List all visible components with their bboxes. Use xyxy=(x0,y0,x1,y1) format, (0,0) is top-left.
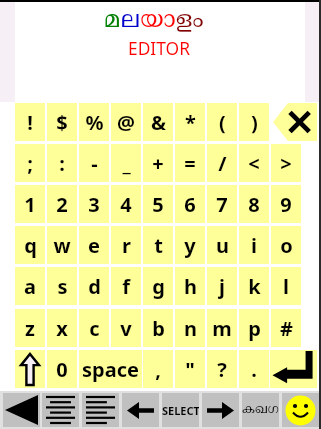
button[interactable]: / xyxy=(207,144,237,182)
staticText: > xyxy=(280,150,292,177)
staticText: v xyxy=(120,315,132,342)
button[interactable]: i xyxy=(239,226,269,264)
button[interactable]: 2 xyxy=(47,185,77,223)
button[interactable]: > xyxy=(271,144,301,182)
staticText: # xyxy=(280,315,293,342)
staticText: : xyxy=(59,150,65,177)
button[interactable]: a xyxy=(15,267,45,305)
staticText: % xyxy=(85,109,104,136)
button[interactable]: + xyxy=(143,144,173,182)
button[interactable]: Move right xyxy=(202,393,239,427)
button[interactable]: y xyxy=(175,226,205,264)
button[interactable]: r xyxy=(111,226,141,264)
staticText: " xyxy=(185,356,195,383)
button[interactable]: 5 xyxy=(143,185,173,223)
button[interactable]: - xyxy=(79,144,109,182)
button[interactable]: j xyxy=(207,267,237,305)
button[interactable]: l xyxy=(271,267,301,305)
button[interactable]: x xyxy=(47,309,77,347)
staticText: ( xyxy=(219,109,226,136)
button[interactable]: * xyxy=(175,103,205,141)
staticText: l xyxy=(283,273,289,300)
button[interactable]: p xyxy=(239,309,269,347)
button[interactable]: c xyxy=(79,309,109,347)
button[interactable]: . xyxy=(239,350,269,388)
button[interactable]: Align center xyxy=(42,393,79,427)
button[interactable]: m xyxy=(207,309,237,347)
button[interactable]: z xyxy=(15,309,45,347)
staticText: t xyxy=(154,232,163,259)
button[interactable]: " xyxy=(175,350,205,388)
button[interactable]: % xyxy=(79,103,109,141)
button[interactable]: u xyxy=(207,226,237,264)
staticText: 3 xyxy=(88,191,100,218)
button[interactable]: # xyxy=(271,309,301,347)
button[interactable]: 9 xyxy=(271,185,301,223)
staticText: i xyxy=(251,232,257,259)
staticText: c xyxy=(89,315,100,342)
staticText: ? xyxy=(217,356,227,383)
button[interactable]: 0 xyxy=(47,350,77,388)
staticText: $ xyxy=(56,109,68,136)
button[interactable]: Align left xyxy=(82,393,119,427)
button[interactable]: b xyxy=(143,309,173,347)
button[interactable]: ) xyxy=(239,103,269,141)
button[interactable]: t xyxy=(143,226,173,264)
button[interactable]: 7 xyxy=(207,185,237,223)
staticText: കഖഗ xyxy=(242,402,279,418)
staticText: g xyxy=(152,273,165,300)
staticText: h xyxy=(184,273,197,300)
button[interactable]: h xyxy=(175,267,205,305)
button[interactable]: e xyxy=(79,226,109,264)
button[interactable]: Move left xyxy=(122,393,159,427)
button[interactable]: o xyxy=(271,226,301,264)
button[interactable]: ? xyxy=(207,350,237,388)
button[interactable]: q xyxy=(15,226,45,264)
button[interactable]: ( xyxy=(207,103,237,141)
staticText: x xyxy=(56,315,68,342)
staticText: d xyxy=(88,273,101,300)
staticText: b xyxy=(152,315,165,342)
button[interactable]: : xyxy=(47,144,77,182)
button[interactable]: Malayalam xyxy=(242,393,279,427)
button[interactable]: 3 xyxy=(79,185,109,223)
button[interactable]: Shift xyxy=(15,350,45,388)
staticText: മലയാളം xyxy=(104,6,204,36)
button[interactable]: s xyxy=(47,267,77,305)
button[interactable]: 1 xyxy=(15,185,45,223)
staticText: + xyxy=(152,150,164,177)
button[interactable]: @ xyxy=(111,103,141,141)
button[interactable]: 8 xyxy=(239,185,269,223)
button[interactable]: = xyxy=(175,144,205,182)
button[interactable]: g xyxy=(143,267,173,305)
button[interactable]: Backspace xyxy=(270,103,317,141)
button[interactable]: Enter xyxy=(270,350,317,388)
button[interactable]: Back xyxy=(3,393,40,427)
button[interactable]: k xyxy=(239,267,269,305)
button[interactable]: f xyxy=(111,267,141,305)
button[interactable]: $ xyxy=(47,103,77,141)
staticText: , xyxy=(155,356,161,383)
staticText: 9 xyxy=(280,191,292,218)
button[interactable]: 6 xyxy=(175,185,205,223)
button[interactable]: < xyxy=(239,144,269,182)
button[interactable]: 4 xyxy=(111,185,141,223)
button[interactable]: ! xyxy=(15,103,45,141)
staticText: - xyxy=(91,150,98,177)
button[interactable]: & xyxy=(143,103,173,141)
staticText: 6 xyxy=(184,191,196,218)
staticText: EDITOR xyxy=(128,36,190,60)
button[interactable]: d xyxy=(79,267,109,305)
staticText: _ xyxy=(122,150,131,177)
button[interactable]: Emoji xyxy=(282,393,319,427)
button[interactable]: space xyxy=(79,350,142,388)
button[interactable]: n xyxy=(175,309,205,347)
staticText: j xyxy=(219,273,225,300)
button[interactable]: , xyxy=(143,350,173,388)
button[interactable]: ; xyxy=(15,144,45,182)
staticText: = xyxy=(184,150,196,177)
button[interactable]: Select xyxy=(162,393,199,427)
button[interactable]: v xyxy=(111,309,141,347)
button[interactable]: _ xyxy=(111,144,141,182)
button[interactable]: w xyxy=(47,226,77,264)
